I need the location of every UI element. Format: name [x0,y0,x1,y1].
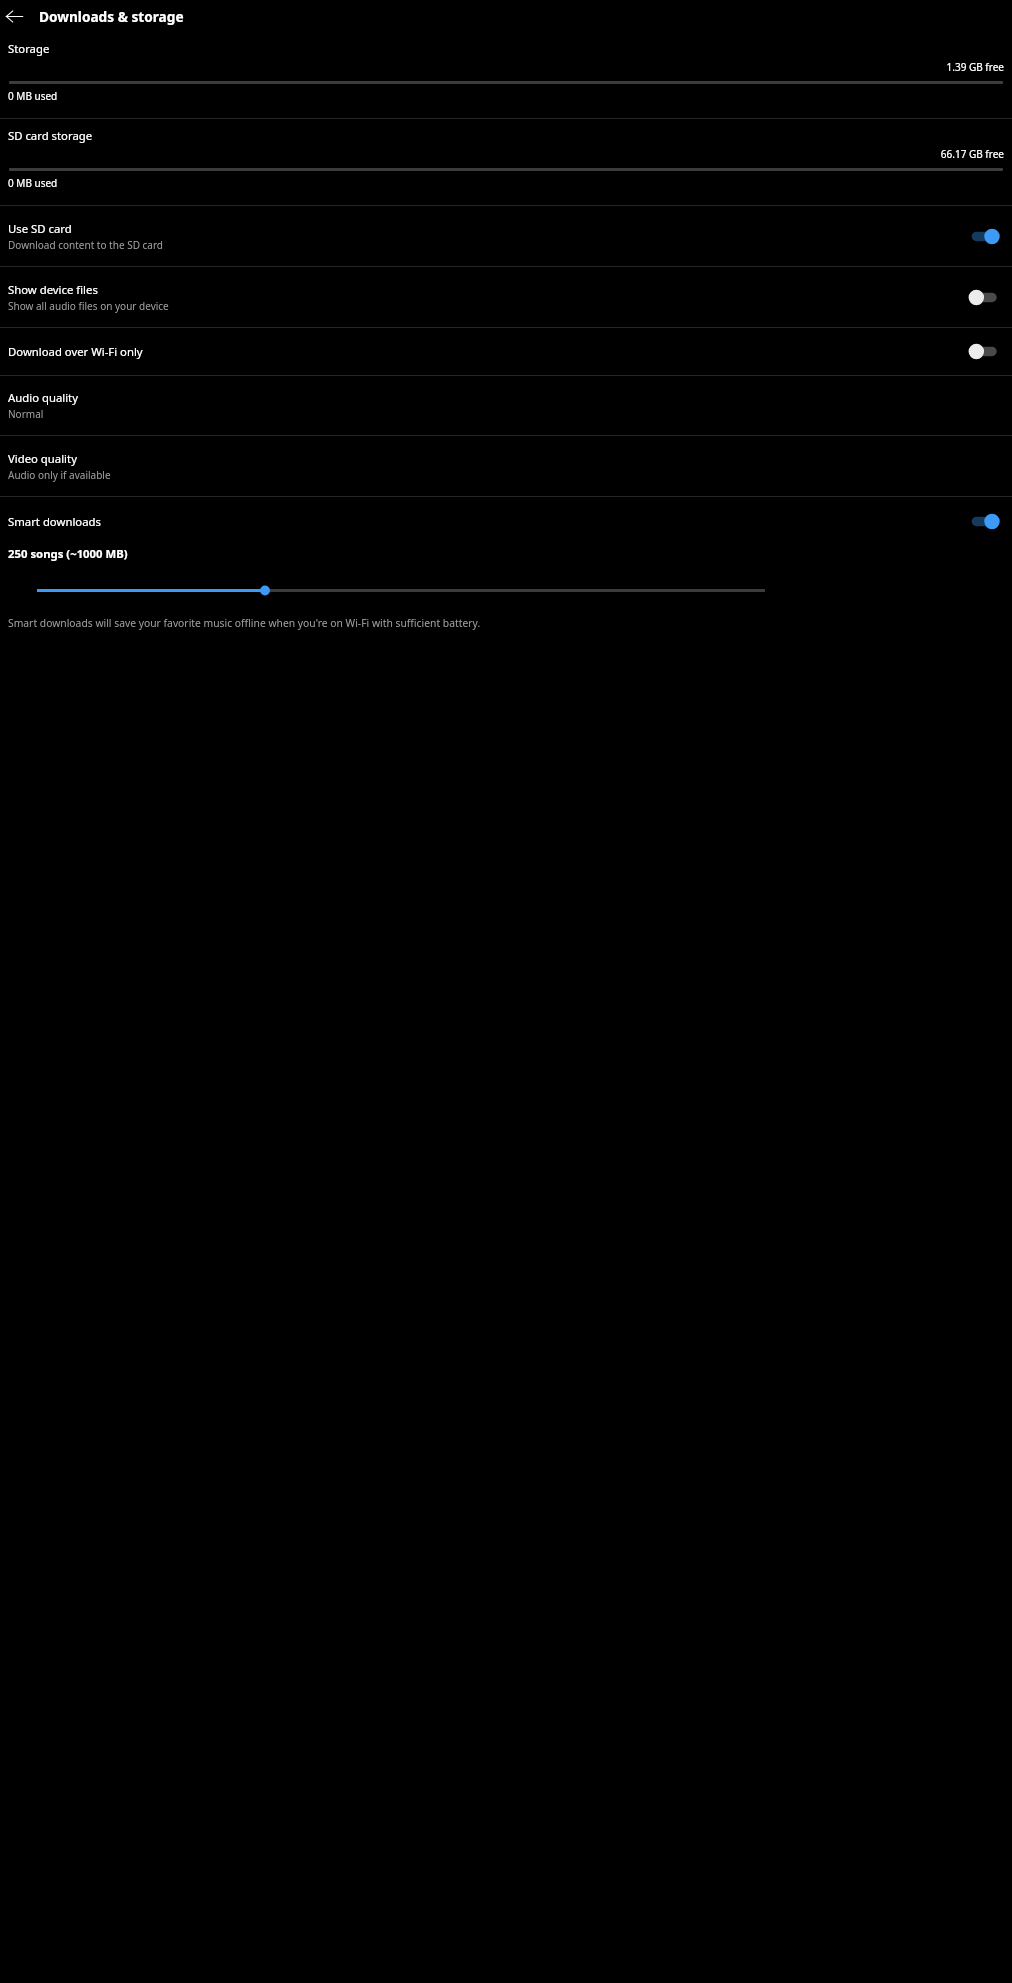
staticText: Downloads & storage [39,7,184,26]
button[interactable]: Video quality [0,436,1012,496]
staticText: Show device files [8,282,98,297]
staticText: 0 MB used [8,89,58,103]
staticText: Normal [8,407,44,421]
button[interactable]: Number of songs slider [0,582,1012,599]
staticText: Download content to the SD card [8,238,164,252]
button[interactable]: Audio quality [0,376,1012,435]
button[interactable]: Use SD card [958,218,1008,255]
staticText: Video quality [8,451,77,466]
staticText: SD card storage [8,128,93,143]
button[interactable]: Smart downloads [958,503,1008,540]
staticText: 66.17 GB free [0,147,1004,161]
staticText: Smart downloads will save your favorite … [8,616,481,630]
button[interactable]: Show device files [958,279,1008,316]
staticText: Smart downloads [8,514,958,529]
button[interactable]: Back [2,4,27,29]
button[interactable]: Storage [0,32,1012,118]
button[interactable]: Use SD card [0,206,1012,266]
staticText: Download over Wi-Fi only [8,344,143,359]
staticText: Storage [8,41,50,56]
button[interactable]: Smart downloads [0,497,1012,546]
staticText: Audio quality [8,390,78,405]
staticText: Audio only if available [8,468,111,482]
button[interactable]: Download over Wi-Fi only [0,328,1012,375]
staticText: Show all audio files on your device [8,299,169,313]
button[interactable]: Download over Wi-Fi only [958,333,1008,370]
staticText: 0 MB used [8,176,58,190]
button[interactable]: SD card storage [0,119,1012,205]
staticText: 250 songs (~1000 MB) [8,546,128,561]
staticText: Use SD card [8,221,72,236]
button[interactable]: Show device files [0,267,1012,327]
staticText: 1.39 GB free [0,60,1004,74]
